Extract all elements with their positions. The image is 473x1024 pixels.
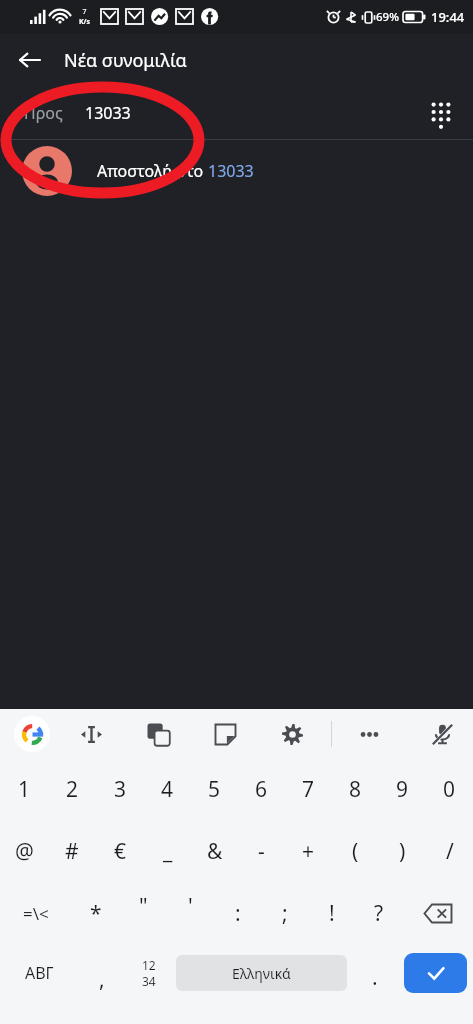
button[interactable]: 1	[0, 758, 48, 820]
button[interactable]: .	[351, 944, 398, 1002]
button[interactable]: /	[426, 820, 473, 882]
staticText: 13033	[208, 160, 254, 182]
button[interactable]: 2	[48, 758, 96, 820]
staticText: €	[114, 837, 127, 866]
staticText: 7	[76, 7, 93, 17]
staticText: (	[352, 837, 359, 866]
button[interactable]: Ελληνικά	[176, 955, 347, 991]
staticText: +	[302, 837, 315, 866]
button[interactable]: @	[0, 820, 48, 882]
staticText: 13033	[85, 102, 131, 124]
button[interactable]: Translate	[141, 717, 175, 751]
staticText: 34	[142, 973, 156, 989]
button[interactable]: Back	[8, 38, 52, 82]
staticText: K/s	[76, 17, 93, 27]
staticText: Ελληνικά	[232, 964, 291, 983]
staticText: _	[163, 837, 173, 866]
button[interactable]: Αποστολή στο	[0, 140, 473, 202]
button[interactable]: 12	[125, 944, 172, 1002]
button[interactable]: 4	[144, 758, 191, 820]
staticText: Νέα συνομιλία	[64, 48, 187, 73]
staticText: ΑΒΓ	[25, 962, 54, 984]
button[interactable]: *	[72, 882, 120, 944]
button[interactable]: "	[120, 882, 167, 944]
staticText: /	[446, 837, 454, 866]
button[interactable]: ;	[261, 882, 308, 944]
button[interactable]: 7	[285, 758, 332, 820]
button[interactable]: !	[308, 882, 355, 944]
button[interactable]: Dialpad	[417, 89, 465, 137]
button[interactable]: )	[379, 820, 426, 882]
button[interactable]: Settings	[275, 717, 309, 751]
button[interactable]: 0	[426, 758, 473, 820]
button[interactable]: 5	[191, 758, 238, 820]
staticText: "	[139, 892, 148, 921]
button[interactable]: 9	[379, 758, 426, 820]
staticText: *	[90, 899, 102, 928]
button[interactable]: _	[144, 820, 191, 882]
staticText: 69%	[376, 9, 399, 25]
button[interactable]: ΑΒΓ	[0, 944, 78, 1002]
button[interactable]: &	[191, 820, 238, 882]
staticText: 3	[114, 775, 127, 804]
staticText: 5	[208, 775, 221, 804]
staticText: 19:44	[431, 8, 465, 26]
button[interactable]: 6	[238, 758, 285, 820]
staticText: -	[258, 837, 265, 866]
staticText: :	[235, 899, 241, 928]
button[interactable]: ,	[78, 944, 125, 1002]
button[interactable]: 3	[96, 758, 144, 820]
button[interactable]: Enter	[404, 953, 467, 993]
button[interactable]: -	[238, 820, 285, 882]
button[interactable]: =\<	[0, 882, 72, 944]
staticText: ;	[282, 899, 288, 928]
button[interactable]: 8	[332, 758, 379, 820]
button[interactable]: (	[332, 820, 379, 882]
staticText: 7	[302, 775, 315, 804]
staticText: #	[65, 837, 79, 866]
button[interactable]: Google	[14, 716, 50, 752]
button[interactable]: #	[48, 820, 96, 882]
staticText: 2	[66, 775, 79, 804]
staticText: =\<	[23, 902, 49, 925]
button[interactable]: Backspace	[402, 882, 473, 944]
staticText: 9	[396, 775, 409, 804]
staticText: Προς	[24, 102, 63, 124]
button[interactable]: €	[96, 820, 144, 882]
button[interactable]: +	[285, 820, 332, 882]
staticText: 12	[142, 957, 156, 973]
staticText: '	[188, 892, 193, 921]
staticText: ,	[99, 965, 105, 994]
staticText: 6	[255, 775, 268, 804]
staticText: .	[372, 963, 378, 992]
staticText: )	[399, 837, 406, 866]
button[interactable]: Sticker	[208, 717, 242, 751]
staticText: @	[15, 837, 34, 866]
staticText: ?	[374, 899, 384, 928]
staticText: !	[329, 899, 335, 928]
button[interactable]: ?	[355, 882, 402, 944]
staticText: &	[207, 837, 223, 866]
button[interactable]: :	[214, 882, 261, 944]
button[interactable]: Προς	[0, 86, 473, 139]
button[interactable]: Voice input off	[425, 717, 459, 751]
button[interactable]: More options	[352, 717, 386, 751]
staticText: 0	[443, 775, 456, 804]
staticText: 1	[18, 775, 31, 804]
staticText: 4	[161, 775, 174, 804]
staticText: Αποστολή στο	[97, 160, 208, 182]
button[interactable]: '	[167, 882, 214, 944]
button[interactable]: Move cursor	[74, 717, 108, 751]
staticText: 8	[349, 775, 362, 804]
